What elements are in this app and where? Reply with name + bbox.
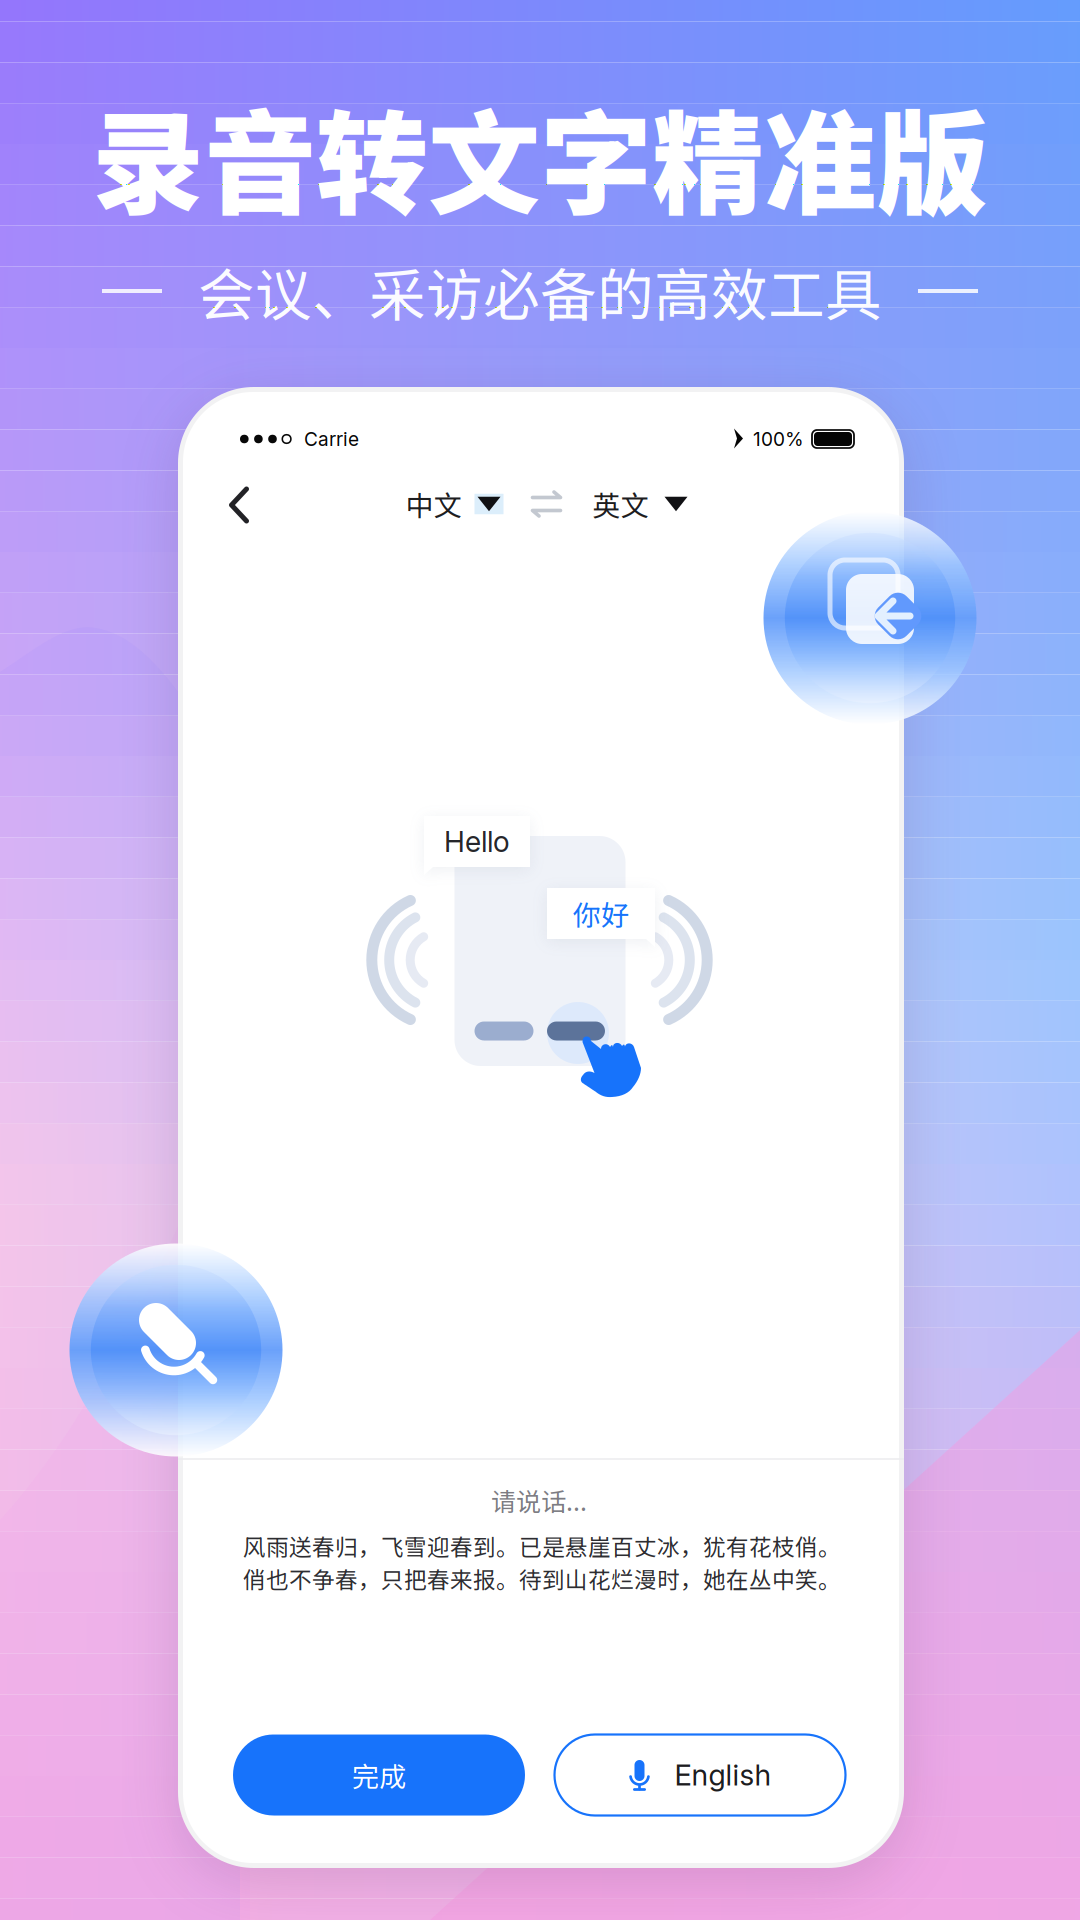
button[interactable]: 完成 — [233, 1734, 525, 1815]
staticText: 完成 — [352, 1755, 406, 1795]
staticText: 中文 — [405, 484, 461, 524]
staticText: Hello — [444, 824, 510, 859]
staticText: 100% — [753, 427, 804, 450]
staticText: English — [674, 1757, 771, 1793]
staticText: 录音转文字精准版 — [92, 75, 988, 237]
staticText: 请说话... — [491, 1482, 587, 1518]
staticText: Carrie — [304, 427, 359, 450]
button[interactable]: English — [554, 1734, 845, 1815]
staticText: 你好 — [573, 893, 629, 934]
staticText: 风雨送春归，飞雪迎春到。已是悬崖百丈冰，犹有花枝俏。俏也不争春，只把春来报。待到… — [243, 1529, 841, 1595]
button[interactable]: 英文 — [592, 472, 690, 536]
button[interactable]: Back — [212, 471, 265, 539]
button[interactable]: 中文 — [405, 472, 503, 536]
staticText: 英文 — [592, 484, 648, 524]
staticText: 会议、采访必备的高效工具 — [198, 250, 882, 332]
